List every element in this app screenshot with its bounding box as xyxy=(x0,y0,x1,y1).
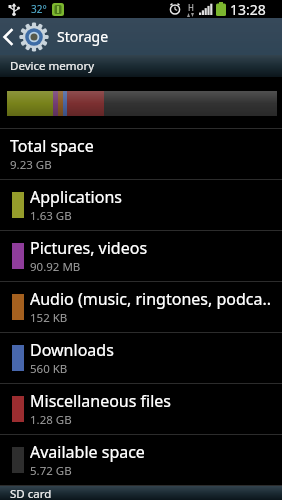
staticText: Pictures, videos xyxy=(30,237,148,259)
staticText: SD card xyxy=(10,486,52,500)
staticText: Audio (music, ringtones, podca.. xyxy=(30,288,272,310)
button[interactable]: Total space xyxy=(0,129,282,179)
staticText: 5.72 GB xyxy=(30,463,72,479)
button[interactable]: Audio (music, ringtones, podca.. xyxy=(0,282,282,332)
button[interactable]: Downloads xyxy=(0,333,282,383)
button[interactable]: Available space xyxy=(0,435,282,485)
button[interactable]: Storage xyxy=(0,18,282,55)
staticText: Device memory xyxy=(10,58,95,74)
staticText: Miscellaneous files xyxy=(30,390,171,412)
staticText: H xyxy=(188,2,194,13)
staticText: 13:28 xyxy=(230,0,266,18)
button[interactable]: Miscellaneous files xyxy=(0,384,282,434)
staticText: 560 KB xyxy=(30,361,68,377)
button[interactable]: Pictures, videos xyxy=(0,231,282,281)
button[interactable]: Applications xyxy=(0,180,282,230)
staticText: 90.92 MB xyxy=(30,259,81,275)
staticText: Storage xyxy=(57,27,109,46)
staticText: Available space xyxy=(30,441,145,463)
staticText: 32° xyxy=(31,2,47,16)
staticText: 9.23 GB xyxy=(10,157,52,173)
staticText: Applications xyxy=(30,186,122,208)
staticText: Total space xyxy=(10,135,94,157)
staticText: Downloads xyxy=(30,339,114,361)
staticText: 1.28 GB xyxy=(30,412,72,428)
staticText: 152 KB xyxy=(30,310,68,326)
staticText: 1.63 GB xyxy=(30,208,72,224)
